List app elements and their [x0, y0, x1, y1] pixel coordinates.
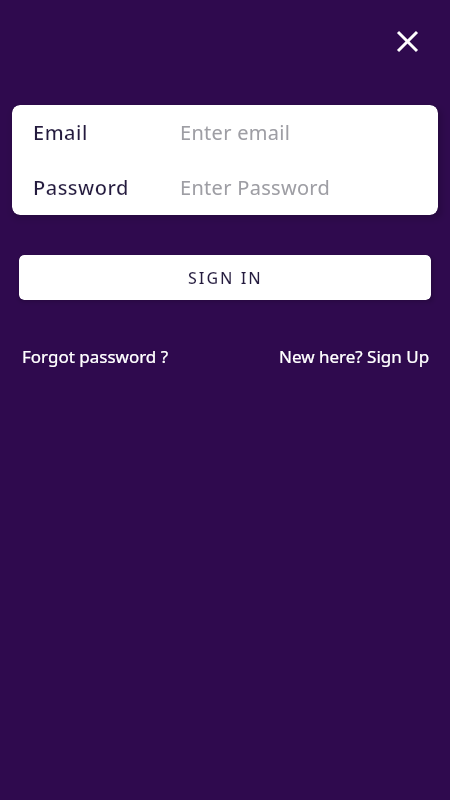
staticText: Email [33, 119, 88, 146]
staticText: Enter email [180, 119, 291, 146]
button[interactable] [392, 26, 422, 56]
button[interactable]: Password [12, 160, 438, 215]
button[interactable]: Email [12, 105, 438, 160]
button[interactable]: SIGN IN [19, 255, 431, 300]
staticText: SIGN IN [188, 267, 263, 289]
staticText: Password [33, 174, 129, 201]
staticText: Forgot password ? [22, 345, 169, 368]
button[interactable]: New here? Sign Up [279, 345, 430, 368]
staticText: Enter Password [180, 174, 331, 201]
button[interactable]: Forgot password ? [22, 345, 169, 368]
staticText: New here? Sign Up [279, 345, 430, 368]
